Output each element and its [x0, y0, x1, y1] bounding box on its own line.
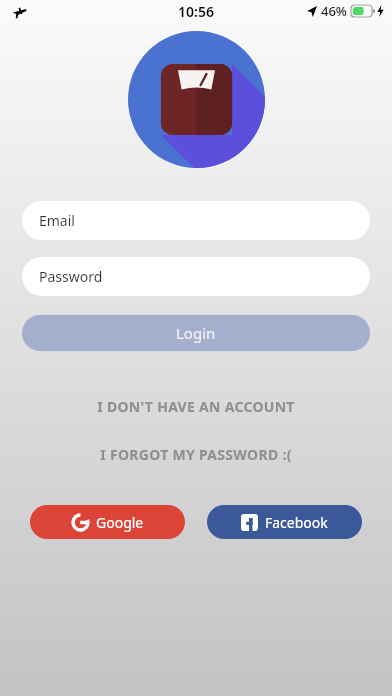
staticText: Google	[96, 513, 144, 532]
staticText: Email	[39, 211, 75, 230]
other: App logo: bathroom scale	[128, 31, 265, 168]
button[interactable]: I FORGOT MY PASSWORD :(	[0, 442, 392, 467]
staticText: 10:56	[178, 2, 214, 21]
button[interactable]: Facebook	[207, 505, 362, 539]
button[interactable]: Email	[22, 201, 370, 240]
button[interactable]: Password	[22, 257, 370, 296]
staticText: I DON'T HAVE AN ACCOUNT	[97, 397, 295, 416]
button[interactable]: Google	[30, 505, 185, 539]
button[interactable]: Login	[22, 315, 370, 351]
staticText: Password	[39, 267, 103, 286]
staticText: Facebook	[265, 513, 328, 532]
staticText: Login	[176, 323, 216, 343]
staticText: I FORGOT MY PASSWORD :(	[100, 445, 292, 464]
staticText: 46%	[321, 2, 347, 20]
button[interactable]: I DON'T HAVE AN ACCOUNT	[0, 394, 392, 419]
other: Airplane mode	[12, 4, 27, 19]
